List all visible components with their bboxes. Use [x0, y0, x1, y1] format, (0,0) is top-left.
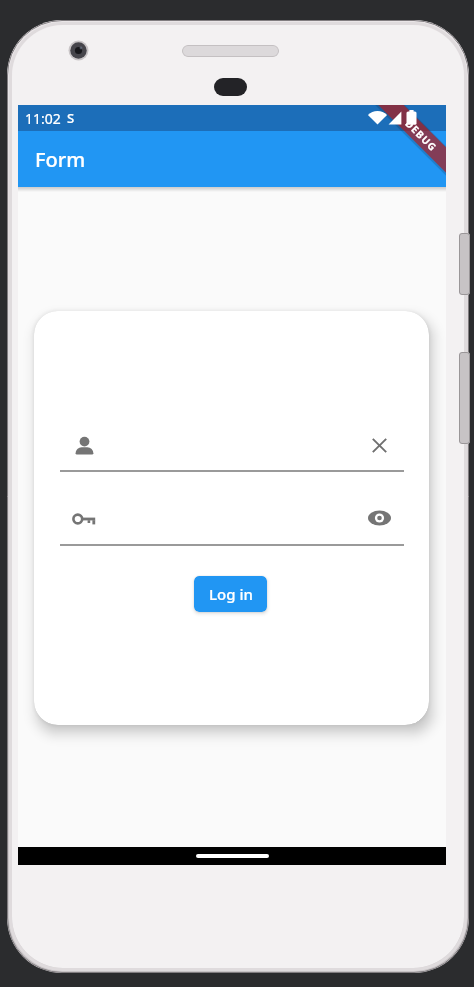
button[interactable]	[364, 430, 394, 460]
button[interactable]	[60, 421, 404, 469]
button[interactable]	[60, 495, 404, 543]
staticText: Log in	[209, 584, 253, 604]
button[interactable]	[196, 854, 269, 858]
staticText: DEBUG	[402, 116, 441, 155]
staticText: S	[67, 109, 75, 127]
staticText: Form	[35, 146, 86, 173]
staticText: 11:02	[25, 109, 61, 128]
button[interactable]: Log in	[194, 576, 267, 612]
button[interactable]	[364, 503, 394, 533]
